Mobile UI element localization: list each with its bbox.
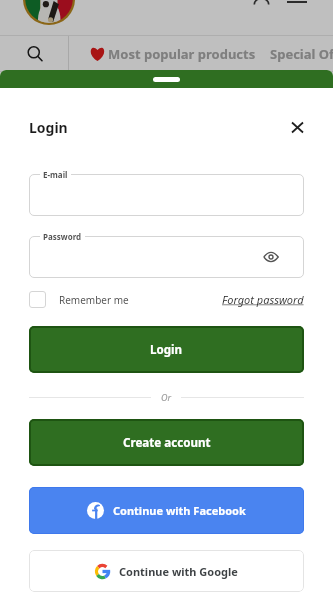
staticText: Continue with Google — [119, 564, 238, 579]
button[interactable]: Menu — [285, 0, 309, 7]
staticText: Or — [161, 391, 172, 403]
button[interactable]: Account — [250, 0, 272, 5]
button[interactable]: Close — [286, 116, 308, 138]
button[interactable]: Create account — [29, 419, 304, 466]
staticText: Continue with Facebook — [113, 503, 246, 518]
button[interactable]: Continue with Facebook — [29, 487, 304, 534]
button[interactable]: Show password — [261, 247, 281, 267]
staticText: Login — [150, 342, 183, 358]
staticText: Remember me — [59, 293, 129, 307]
button[interactable]: Login — [29, 326, 304, 373]
button[interactable] — [29, 236, 304, 278]
staticText: Password — [43, 231, 82, 242]
staticText: E-mail — [43, 169, 68, 180]
staticText: Most popular products — [108, 45, 256, 63]
button[interactable]: Remember me — [29, 291, 129, 308]
staticText: Create account — [123, 435, 211, 451]
button[interactable]: Search — [0, 36, 68, 71]
staticText: Special Of — [270, 45, 333, 63]
button[interactable]: Continue with Google — [29, 550, 304, 592]
button[interactable]: Forgot password — [222, 292, 304, 307]
staticText: Login — [29, 118, 68, 137]
button[interactable] — [29, 174, 304, 216]
